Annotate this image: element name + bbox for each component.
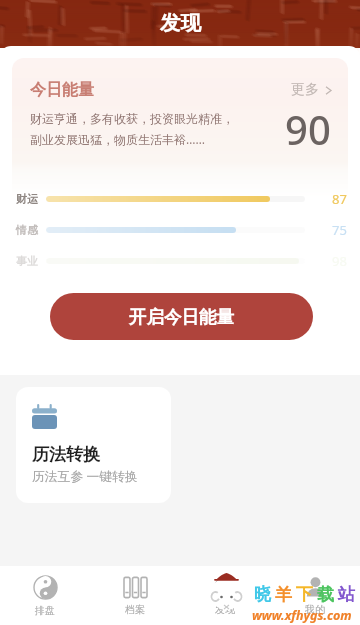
staticText: 站 <box>338 584 355 605</box>
button[interactable]: 我的 <box>270 566 360 625</box>
staticText: 情感 <box>16 223 38 237</box>
staticText: 今日能量 <box>30 80 94 100</box>
staticText: 90 <box>285 102 331 156</box>
staticText: 档案 <box>125 603 145 616</box>
staticText: 发现 <box>160 10 201 36</box>
staticText: 75 <box>332 221 347 239</box>
staticText: 开启今日能量 <box>129 306 234 328</box>
staticText: 历法互参 一键转换 <box>32 467 138 484</box>
staticText: 事业 <box>16 254 38 268</box>
button[interactable]: 发现 <box>180 566 270 625</box>
staticText: 我的 <box>305 603 325 616</box>
staticText: 下 <box>296 584 313 605</box>
staticText: 财运 <box>16 192 38 206</box>
staticText: 98 <box>332 252 347 270</box>
button[interactable]: 档案 <box>90 566 180 625</box>
staticText: 羊 <box>275 584 292 605</box>
button[interactable]: 更多 <box>287 77 337 103</box>
staticText: 副业发展迅猛，物质生活丰裕…… <box>30 131 205 147</box>
staticText: 更多 <box>291 81 319 99</box>
staticText: www.xfhygs.com <box>252 607 352 624</box>
button[interactable]: 开启今日能量 <box>50 293 313 340</box>
staticText: 历法转换 <box>32 444 100 465</box>
staticText: 87 <box>332 190 347 208</box>
staticText: 晓 <box>254 584 271 605</box>
button[interactable]: 历法转换 <box>16 387 171 503</box>
button[interactable]: 排盘 <box>0 566 90 625</box>
staticText: 排盘 <box>35 604 55 617</box>
staticText: 载 <box>317 584 334 605</box>
staticText: 发现 <box>215 603 235 616</box>
staticText: 财运亨通，多有收获，投资眼光精准， <box>30 111 234 126</box>
